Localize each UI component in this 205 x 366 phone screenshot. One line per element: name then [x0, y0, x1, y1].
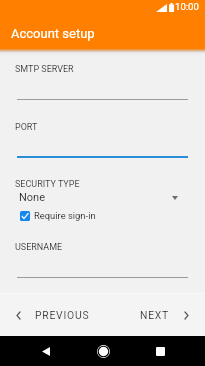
- button[interactable]: Require sign-in: [20, 210, 96, 221]
- staticText: PREVIOUS: [35, 309, 90, 321]
- button[interactable]: Back: [31, 336, 61, 366]
- button[interactable]: Recent apps: [145, 336, 175, 366]
- staticText: Account setup: [11, 26, 95, 41]
- staticText: NEXT: [140, 309, 170, 321]
- staticText: 10:00: [175, 1, 199, 12]
- staticText: None: [19, 191, 46, 204]
- staticText: PORT: [15, 122, 38, 133]
- button[interactable]: NEXT: [140, 309, 188, 321]
- button[interactable]: Home: [88, 336, 118, 366]
- staticText: SECURITY TYPE: [15, 179, 80, 190]
- staticText: USERNAME: [15, 242, 63, 253]
- staticText: SMTP SERVER: [15, 64, 74, 75]
- staticText: Require sign-in: [34, 210, 96, 221]
- button[interactable]: PREVIOUS: [17, 309, 90, 321]
- button[interactable]: Security type dropdown: [165, 190, 185, 206]
